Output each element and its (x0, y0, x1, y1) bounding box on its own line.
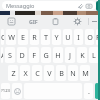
staticText: C (35, 68, 40, 78)
button[interactable]: Send (96, 1, 100, 11)
button[interactable]: Camera (85, 2, 93, 10)
staticText: I (77, 32, 80, 42)
staticText: J (69, 50, 71, 60)
staticText: T (44, 32, 48, 42)
staticText: Q (1, 32, 4, 42)
button[interactable]: Z (8, 65, 18, 81)
staticText: Messaggio (6, 2, 35, 10)
button[interactable]: A (1, 47, 3, 63)
staticText: B (59, 68, 64, 78)
button[interactable]: U (63, 29, 72, 45)
staticText: . (88, 86, 90, 96)
button[interactable]: Clipboard (44, 15, 66, 28)
staticText: K (80, 50, 85, 60)
button[interactable]: G (41, 47, 51, 63)
button[interactable]: F (29, 47, 39, 63)
button[interactable]: M (80, 65, 90, 81)
button[interactable]: ?123 (1, 83, 10, 99)
button[interactable]: Y (52, 29, 61, 45)
button[interactable]: X (20, 65, 30, 81)
staticText: GIF (29, 18, 38, 25)
button[interactable]: Stickers (0, 15, 22, 28)
staticText: S (8, 50, 12, 60)
button[interactable]: Emoji (12, 83, 22, 99)
button[interactable]: R (30, 29, 39, 45)
button[interactable]: B (56, 65, 66, 81)
staticText: R (32, 32, 37, 42)
staticText: L (92, 50, 96, 60)
button[interactable]: H (53, 47, 63, 63)
button[interactable]: N (68, 65, 78, 81)
button[interactable]: J (65, 47, 75, 63)
button[interactable]: S (5, 47, 15, 63)
button[interactable]: Attach (76, 2, 84, 10)
button[interactable]: D (17, 47, 27, 63)
button[interactable]: P (96, 29, 99, 45)
button[interactable]: Messaggio (2, 1, 96, 10)
button[interactable]: I (74, 29, 83, 45)
button[interactable]: C (32, 65, 42, 81)
staticText: E (21, 32, 25, 42)
button[interactable]: Q (1, 29, 4, 45)
staticText: X (23, 68, 28, 78)
staticText: G (43, 50, 49, 60)
staticText: ?123 (1, 88, 10, 94)
button[interactable]: K (77, 47, 87, 63)
staticText: D (19, 50, 25, 60)
button[interactable]: E (18, 29, 28, 45)
button[interactable]: . (84, 83, 93, 99)
button[interactable]: GIF (22, 15, 44, 28)
staticText: O (87, 32, 93, 42)
staticText: V (47, 68, 52, 78)
staticText: A (1, 50, 3, 60)
button[interactable]: Settings (66, 15, 88, 28)
button[interactable]: Enter (95, 83, 99, 99)
button[interactable]: L (89, 47, 99, 63)
button[interactable]: T (41, 29, 50, 45)
button[interactable]: O (85, 29, 94, 45)
staticText: H (55, 50, 61, 60)
staticText: P (96, 32, 99, 42)
staticText: Y (54, 32, 59, 42)
staticText: N (70, 68, 76, 78)
staticText: U (65, 32, 71, 42)
staticText: M (82, 68, 89, 78)
staticText: Z (11, 68, 16, 78)
staticText: W (8, 32, 15, 42)
button[interactable]: V (44, 65, 54, 81)
button[interactable]: Collapse (89, 15, 100, 28)
staticText: F (32, 50, 36, 60)
button[interactable]: W (6, 29, 16, 45)
